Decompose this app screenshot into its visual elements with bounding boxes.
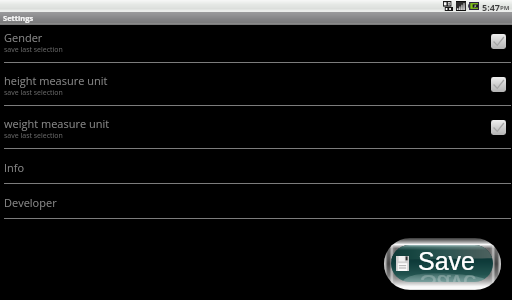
staticText: save last selection bbox=[4, 45, 63, 55]
staticText: weight measure unit bbox=[4, 116, 110, 131]
staticText: Save bbox=[418, 247, 475, 275]
staticText: save last selection bbox=[4, 131, 63, 141]
button[interactable]: Developer bbox=[0, 184, 512, 219]
button[interactable]: Save bbox=[384, 238, 501, 290]
staticText: save last selection bbox=[4, 88, 63, 98]
staticText: Developer bbox=[4, 195, 57, 210]
staticText: Save bbox=[420, 270, 477, 282]
staticText: height measure unit bbox=[4, 73, 108, 88]
other: Checked bbox=[491, 34, 506, 49]
button[interactable]: Info bbox=[0, 149, 512, 184]
staticText: PM bbox=[500, 4, 510, 12]
button[interactable]: Gender bbox=[0, 20, 512, 63]
staticText: Settings bbox=[3, 13, 34, 23]
staticText: Gender bbox=[4, 30, 43, 45]
other: Checked bbox=[491, 120, 506, 135]
staticText: Info bbox=[4, 160, 25, 175]
staticText: 5:47 bbox=[482, 1, 501, 13]
button[interactable]: height measure unit bbox=[0, 63, 512, 106]
button[interactable]: weight measure unit bbox=[0, 106, 512, 149]
other: Checked bbox=[491, 77, 506, 92]
